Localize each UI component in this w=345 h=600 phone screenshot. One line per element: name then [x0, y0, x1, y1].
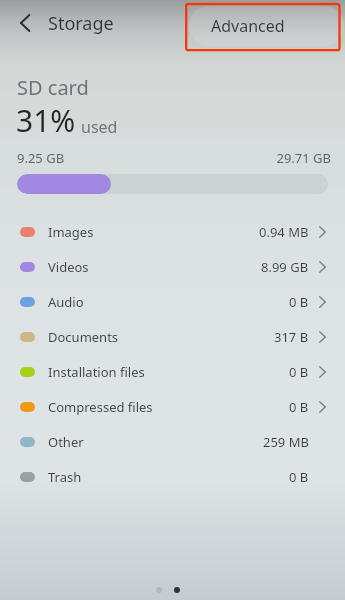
button[interactable]: Other — [0, 424, 345, 459]
staticText: 317 B — [274, 328, 309, 346]
button[interactable]: Advanced — [189, 6, 344, 46]
staticText: SD card — [17, 74, 89, 101]
staticText: Compressed files — [48, 398, 153, 416]
staticText: Images — [48, 223, 94, 241]
staticText: Trash — [48, 468, 82, 486]
staticText: Advanced — [211, 15, 285, 37]
staticText: 259 MB — [263, 433, 309, 451]
staticText: Documents — [48, 328, 119, 346]
staticText: Other — [48, 433, 84, 451]
button[interactable]: Documents — [0, 319, 345, 354]
staticText: 0.94 MB — [259, 223, 309, 241]
button[interactable]: Back — [5, 3, 45, 43]
staticText: 0 B — [289, 363, 309, 381]
staticText: 9.25 GB — [17, 149, 65, 167]
staticText: 29.71 GB — [231, 149, 331, 167]
staticText: 0 B — [289, 293, 309, 311]
button[interactable]: Trash — [0, 459, 345, 494]
button[interactable]: Audio — [0, 284, 345, 319]
staticText: Audio — [48, 293, 84, 311]
button[interactable]: Compressed files — [0, 389, 345, 424]
staticText: used — [81, 116, 118, 138]
button[interactable]: Videos — [0, 249, 345, 284]
staticText: 8.99 GB — [261, 258, 309, 276]
button[interactable]: Images — [0, 214, 345, 249]
button[interactable]: Installation files — [0, 354, 345, 389]
staticText: 31% — [16, 100, 76, 141]
staticText: 0 B — [289, 398, 309, 416]
staticText: Videos — [48, 258, 89, 276]
staticText: 0 B — [289, 468, 309, 486]
staticText: Installation files — [48, 363, 145, 381]
staticText: Storage — [48, 11, 114, 36]
